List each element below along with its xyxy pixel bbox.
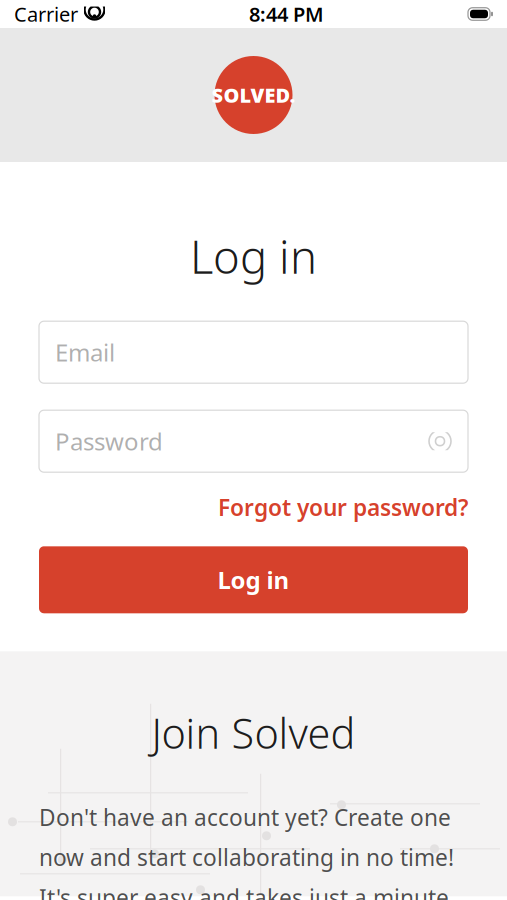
staticText: Password: [55, 425, 163, 457]
staticText: Log in: [190, 226, 317, 286]
staticText: Carrier: [14, 1, 78, 27]
button[interactable]: Password: [39, 410, 468, 472]
button[interactable]: Log in: [39, 546, 468, 613]
staticText: Don't have an account yet? Create one no…: [39, 802, 455, 900]
staticText: SOLVED.: [211, 82, 295, 108]
staticText: Forgot your password?: [218, 492, 468, 522]
staticText: Email: [55, 336, 115, 368]
button[interactable]: Forgot your password?: [218, 492, 468, 522]
staticText: 8:44 PM: [249, 1, 324, 27]
staticText: Join Solved: [151, 705, 355, 760]
staticText: Log in: [217, 564, 289, 596]
button[interactable]: Email: [39, 321, 468, 383]
